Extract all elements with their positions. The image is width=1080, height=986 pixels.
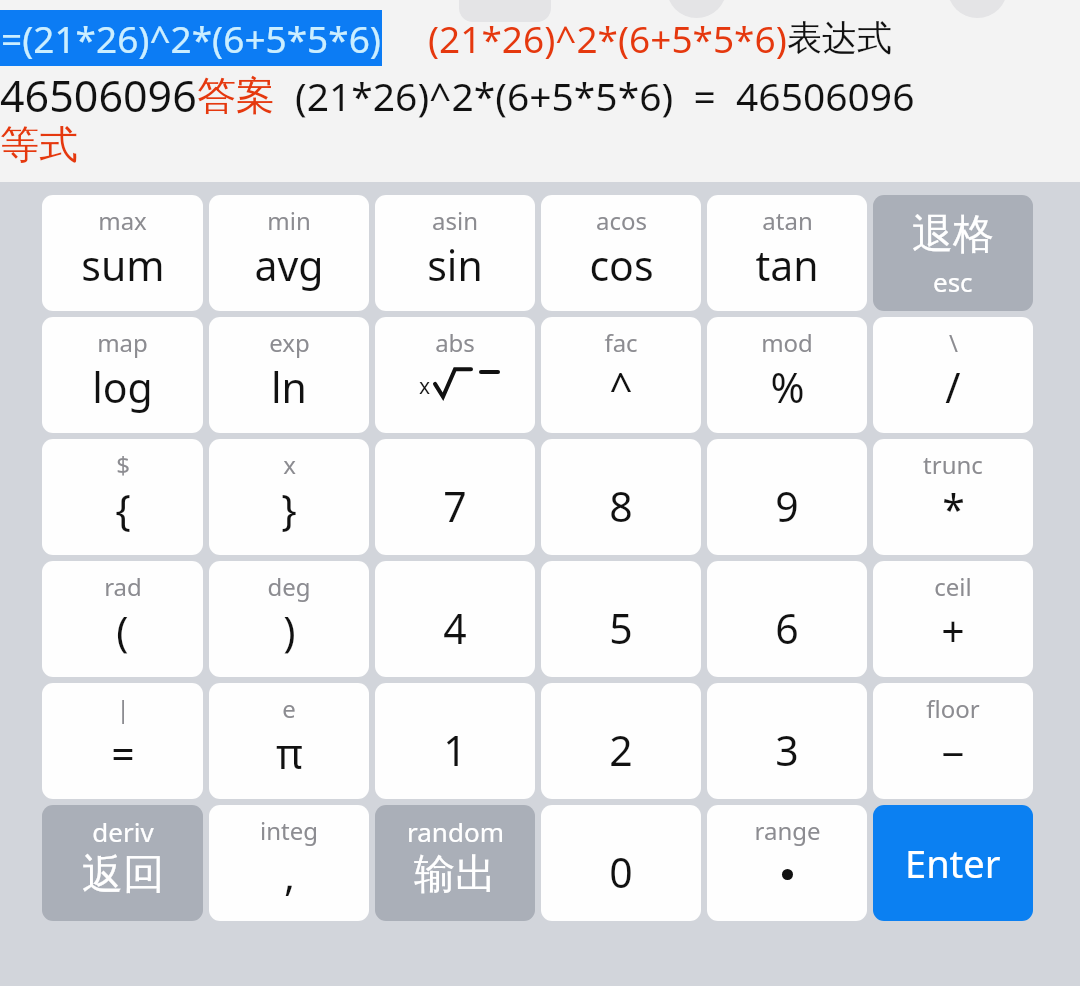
staticText: log [92,359,153,415]
button[interactable]: x } [209,439,369,555]
button[interactable]: min avg [209,195,369,311]
staticText: fac [604,326,638,359]
button[interactable]: 5 [541,561,701,677]
button[interactable]: exp ln [209,317,369,433]
staticText: mod [761,326,813,359]
button[interactable]: ceil + [873,561,1033,677]
button[interactable]: range [707,805,867,921]
staticText: abs [435,326,475,359]
staticText: sin [427,237,483,293]
staticText: − [941,725,965,781]
staticText: x [283,448,296,481]
staticText: cos [589,237,654,293]
staticText: = [111,725,135,781]
staticText: , [284,847,295,903]
staticText: ( [116,603,129,659]
button[interactable]: deg ) [209,561,369,677]
staticText: 1 [443,722,467,778]
button[interactable]: abs [375,317,535,433]
staticText: e [282,692,296,725]
button[interactable]: $ { [42,439,203,555]
staticText: / [945,359,961,415]
staticText: 8 [609,478,633,534]
staticText: integ [260,814,318,847]
button[interactable]: acos cos [541,195,701,311]
staticText: * [942,481,965,537]
staticText: atan [762,204,813,237]
staticText: (21*26)^2*(6+5*5*6) [428,13,787,63]
staticText: ) [283,603,296,659]
staticText: 5 [609,600,633,656]
staticText: max [98,204,147,237]
button[interactable]: random 输出 [375,805,535,921]
staticText: 0 [609,844,633,900]
staticText: trunc [923,448,983,481]
button[interactable]: | = [42,683,203,799]
button[interactable]: 7 [375,439,535,555]
staticText: esc [933,264,973,299]
staticText: (21*26)^2*(6+5*5*6) = 46506096 [295,69,915,122]
button[interactable]: \ / [873,317,1033,433]
button[interactable]: Enter [873,805,1033,921]
staticText: $ [116,448,130,481]
button[interactable]: 6 [707,561,867,677]
staticText: deriv [92,814,154,849]
button[interactable]: 4 [375,561,535,677]
button[interactable]: =(21*26)^2*(6+5*5*6) [0,10,382,66]
button[interactable]: deriv 返回 [42,805,203,921]
staticText: deg [267,570,311,603]
button[interactable]: 9 [707,439,867,555]
button[interactable]: rad ( [42,561,203,677]
button[interactable]: max sum [42,195,203,311]
button[interactable]: 退格 esc [873,195,1033,311]
staticText: exp [269,326,310,359]
staticText: | [116,692,130,725]
button[interactable]: 1 [375,683,535,799]
staticText: 答案 [197,71,275,120]
staticText: tan [755,237,819,293]
staticText: π [276,725,303,781]
staticText: 等式 [0,120,78,169]
staticText: 4 [443,600,467,656]
staticText: avg [254,237,324,293]
staticText: 7 [443,478,467,534]
staticText: sum [81,237,165,293]
staticText: asin [432,204,478,237]
button[interactable]: e π [209,683,369,799]
staticText: 退格 [912,209,994,261]
staticText: map [97,326,148,359]
staticText: floor [926,692,980,725]
staticText: } [281,481,297,537]
staticText: \ [949,326,958,359]
staticText: + [941,603,965,659]
staticText: % [770,359,805,415]
button[interactable]: integ , [209,805,369,921]
staticText: 2 [609,722,633,778]
staticText: ^ [609,359,633,415]
staticText: min [267,204,311,237]
staticText: =(21*26)^2*(6+5*5*6) [1,13,381,63]
button[interactable]: floor − [873,683,1033,799]
staticText: Enter [905,837,1001,889]
staticText: 6 [775,600,799,656]
button[interactable]: atan tan [707,195,867,311]
button[interactable]: 8 [541,439,701,555]
button[interactable]: trunc * [873,439,1033,555]
staticText: ln [271,359,307,415]
staticText: 输出 [414,849,496,901]
staticText: { [115,481,131,537]
staticText: acos [596,204,647,237]
button[interactable]: mod % [707,317,867,433]
staticText: 表达式 [787,16,892,60]
staticText: 9 [775,478,799,534]
staticText: ceil [934,570,972,603]
button[interactable]: 3 [707,683,867,799]
button[interactable]: 0 [541,805,701,921]
staticText: 46506096 [0,66,197,125]
button[interactable]: asin sin [375,195,535,311]
button[interactable]: map log [42,317,203,433]
button[interactable]: 2 [541,683,701,799]
staticText: rad [104,570,142,603]
staticText: random [407,814,504,849]
button[interactable]: fac ^ [541,317,701,433]
